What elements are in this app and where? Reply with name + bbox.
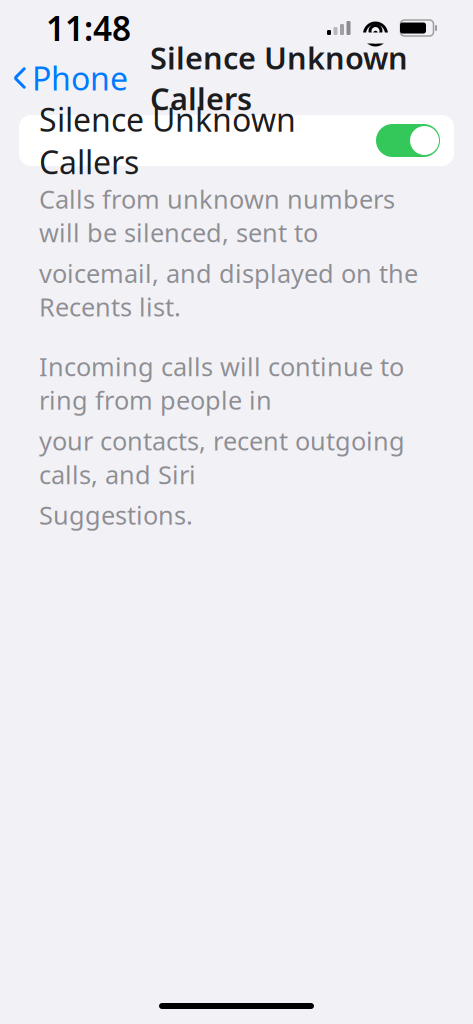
button[interactable]: Silence Unknown Callers [19, 115, 454, 166]
staticText: Suggestions. [39, 498, 193, 532]
staticText: Silence Unknown Callers [39, 98, 296, 183]
staticText: Silence Unknown Callers [150, 37, 408, 119]
staticText: your contacts, recent outgoing calls, an… [39, 424, 405, 491]
staticText: Calls from unknown numbers will be silen… [39, 182, 395, 249]
staticText: voicemail, and displayed on the Recents … [39, 256, 418, 324]
button[interactable]: Phone [0, 51, 128, 105]
staticText: Incoming calls will continue to ring fro… [39, 350, 404, 417]
staticText: 11:48 [46, 6, 131, 50]
staticText: Phone [32, 57, 128, 99]
